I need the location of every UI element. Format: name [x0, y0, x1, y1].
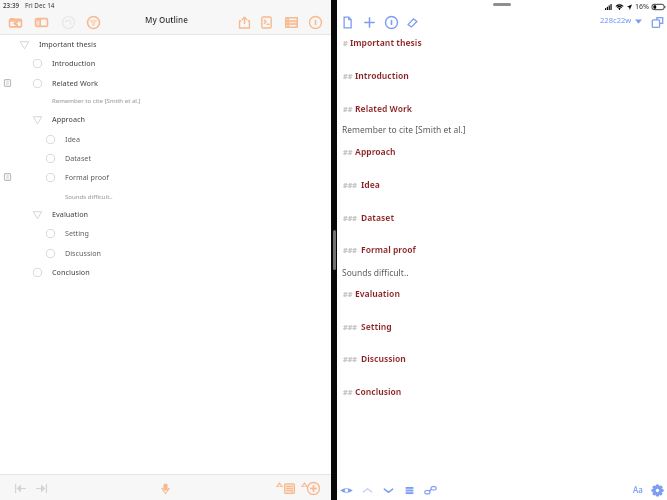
staticText: Remember to cite [Smith et al.] [342, 124, 466, 136]
button[interactable]: ## [337, 144, 667, 160]
button[interactable]: Dataset [0, 148, 331, 168]
button[interactable]: ### [337, 319, 667, 335]
staticText: Formal proof [361, 244, 416, 256]
button[interactable]: Text size [633, 484, 643, 495]
staticText: Idea [65, 134, 80, 144]
button[interactable]: Evaluation [0, 204, 331, 224]
button[interactable]: Tag [403, 13, 421, 31]
staticText: Discussion [361, 353, 406, 365]
staticText: Sounds difficult.. [342, 267, 409, 279]
staticText: ## [343, 387, 353, 397]
staticText: Discussion [65, 248, 101, 258]
button[interactable]: Idea [0, 129, 331, 149]
button[interactable]: ### [337, 351, 667, 367]
button[interactable]: Related Work [0, 73, 331, 93]
staticText: Formal proof [65, 172, 109, 182]
staticText: 23:39 [3, 1, 20, 10]
staticText: # [343, 38, 348, 48]
button[interactable]: Sounds difficult.. [342, 265, 409, 281]
button[interactable]: Settings [648, 481, 666, 499]
button[interactable]: Share [235, 13, 253, 31]
button[interactable]: Split view [32, 13, 50, 31]
button[interactable]: Dictate [156, 479, 174, 497]
staticText: Important thesis [350, 37, 422, 49]
staticText: ### [343, 245, 357, 255]
staticText: Introduction [355, 70, 409, 82]
button[interactable]: Back to folders [6, 13, 24, 31]
staticText: Introduction [52, 58, 96, 68]
button[interactable]: Outdent [11, 479, 29, 497]
staticText: Remember to cite [Smith et al.] [52, 96, 141, 104]
staticText: ### [343, 354, 357, 364]
button[interactable]: List [400, 481, 418, 499]
staticText: Sounds difficult.. [65, 192, 113, 200]
staticText: ### [343, 180, 357, 190]
staticText: Fri Dec 14 [25, 1, 55, 10]
button[interactable]: Approach [0, 109, 331, 129]
staticText: Related Work [355, 103, 413, 115]
button[interactable]: Discussion [0, 243, 331, 263]
button[interactable]: New document [338, 13, 356, 31]
button[interactable]: 228c22w [600, 15, 632, 25]
staticText: My Outline [145, 14, 188, 25]
button[interactable]: Remember to cite [Smith et al.] [0, 91, 331, 109]
staticText: Approach [355, 146, 396, 158]
button[interactable]: Outline list [282, 13, 300, 31]
staticText: Important thesis [39, 39, 97, 49]
button[interactable]: Formal proof [0, 167, 331, 187]
button[interactable]: ## [337, 384, 667, 400]
button[interactable]: Remember to cite [Smith et al.] [342, 122, 466, 138]
button[interactable]: Add item [304, 479, 322, 497]
staticText: Setting [65, 228, 89, 238]
button[interactable]: ## [337, 68, 667, 84]
staticText: Aa [633, 484, 643, 495]
button[interactable]: Link [421, 481, 439, 499]
staticText: Approach [52, 114, 86, 124]
staticText: Dataset [65, 153, 91, 163]
button[interactable]: Filter [84, 13, 102, 31]
staticText: 228c22w [600, 15, 632, 25]
button[interactable]: Setting [0, 223, 331, 243]
button[interactable]: New note [280, 479, 298, 497]
button[interactable]: Important thesis [0, 34, 331, 54]
button[interactable]: Sounds difficult.. [0, 187, 331, 205]
button[interactable]: ## [337, 286, 667, 302]
staticText: ## [343, 71, 353, 81]
button[interactable]: Preview [337, 481, 355, 499]
staticText: ## [343, 104, 353, 114]
button[interactable]: My Outline [145, 14, 188, 25]
button[interactable]: Info [382, 13, 400, 31]
button[interactable]: Version menu [635, 19, 642, 24]
staticText: Evaluation [52, 209, 89, 219]
button[interactable]: # [337, 35, 667, 51]
button[interactable]: Script [257, 13, 275, 31]
staticText: Dataset [361, 212, 395, 224]
staticText: 16% [635, 2, 649, 12]
staticText: Conclusion [355, 386, 402, 398]
staticText: ## [343, 147, 353, 157]
button[interactable]: Next [379, 481, 397, 499]
button[interactable]: Info [306, 13, 324, 31]
staticText: ### [343, 213, 357, 223]
button[interactable]: Add [360, 13, 378, 31]
button[interactable]: Expand [648, 13, 666, 31]
button[interactable]: Indent [32, 479, 50, 497]
staticText: Conclusion [52, 267, 90, 277]
button[interactable]: Introduction [0, 53, 331, 73]
staticText: ## [343, 289, 353, 299]
staticText: Related Work [52, 78, 98, 88]
staticText: Evaluation [355, 288, 400, 300]
button[interactable]: Undo [59, 13, 77, 31]
staticText: Setting [361, 321, 392, 333]
button[interactable]: Conclusion [0, 262, 331, 282]
button[interactable]: ### [337, 210, 667, 226]
button[interactable]: ## [337, 101, 667, 117]
staticText: Idea [361, 179, 380, 191]
button[interactable]: ### [337, 177, 667, 193]
button[interactable]: Previous [358, 481, 376, 499]
button[interactable]: ### [337, 242, 667, 258]
staticText: ### [343, 322, 357, 332]
